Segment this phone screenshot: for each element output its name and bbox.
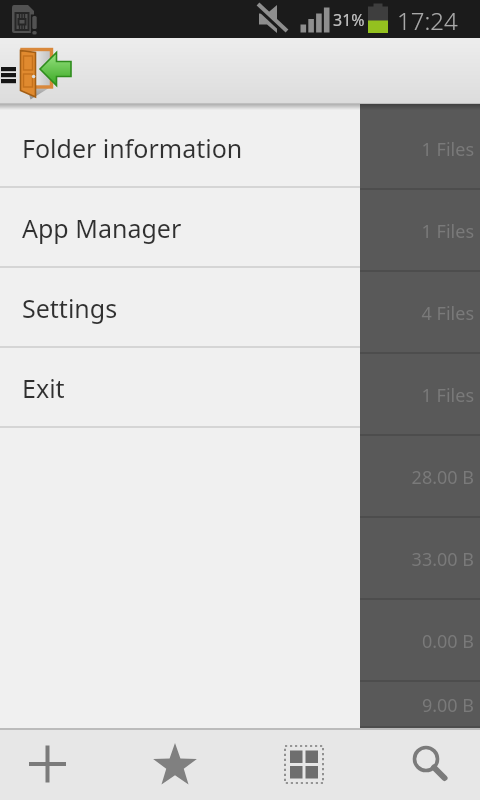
button[interactable] (360, 728, 480, 800)
staticText: 1 Files (421, 137, 474, 162)
button[interactable]: App Manager (0, 188, 360, 268)
staticText: App Manager (22, 211, 182, 245)
button[interactable]: Settings (0, 268, 360, 348)
staticText: Settings (22, 291, 118, 325)
staticText: 28.00 B (411, 465, 474, 490)
staticText: 0.00 B (421, 629, 474, 654)
staticText: 9.00 B (421, 693, 474, 718)
staticText: 33.00 B (411, 547, 474, 572)
button[interactable]: Exit (0, 348, 360, 428)
staticText: Folder information (22, 131, 243, 165)
staticText: 1 Files (421, 219, 474, 244)
staticText: 1 Files (421, 383, 474, 408)
staticText: 31% (333, 9, 365, 31)
staticText: 4 Files (421, 301, 474, 326)
staticText: 17:24 (397, 4, 458, 37)
staticText: Exit (22, 371, 65, 405)
button[interactable] (0, 38, 80, 104)
button[interactable]: Folder information (0, 108, 360, 188)
button[interactable] (240, 728, 360, 800)
button[interactable] (120, 728, 240, 800)
button[interactable] (0, 728, 120, 800)
